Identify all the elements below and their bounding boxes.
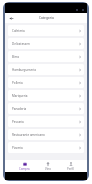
button[interactable]: Pescaria [8,116,84,127]
staticText: Delicatessen [12,42,78,46]
staticText: Panaderia [12,107,78,111]
button[interactable]: Perfil [65,162,76,171]
button[interactable]: Pizzeria [8,142,84,153]
staticText: Pizzeria [12,146,78,150]
button[interactable]: Back [8,15,15,22]
staticText: Categoria [39,16,54,20]
button[interactable]: Hamburgueseria [8,64,84,75]
button[interactable]: Polleria [8,77,84,88]
button[interactable]: Delicatessen [8,38,84,49]
button[interactable]: Mariqueria [8,90,84,101]
staticText: Cafeteria [12,29,78,33]
button[interactable]: Panaderia [8,103,84,114]
button[interactable]: Vino [43,162,53,171]
staticText: Restaurante americano [12,133,78,137]
button[interactable]: Birra [8,51,84,62]
staticText: Hamburgueseria [12,68,78,72]
staticText: Compra [19,167,30,171]
staticText: Birra [12,55,78,59]
staticText: Pescaria [12,120,78,124]
staticText: Vino [45,167,51,171]
staticText: Polleria [12,81,78,85]
staticText: Perfil [67,167,74,171]
button[interactable]: Cafeteria [8,25,84,36]
button[interactable]: Restaurante americano [8,129,84,140]
button[interactable]: Compra [17,162,32,171]
staticText: Mariqueria [12,94,78,98]
